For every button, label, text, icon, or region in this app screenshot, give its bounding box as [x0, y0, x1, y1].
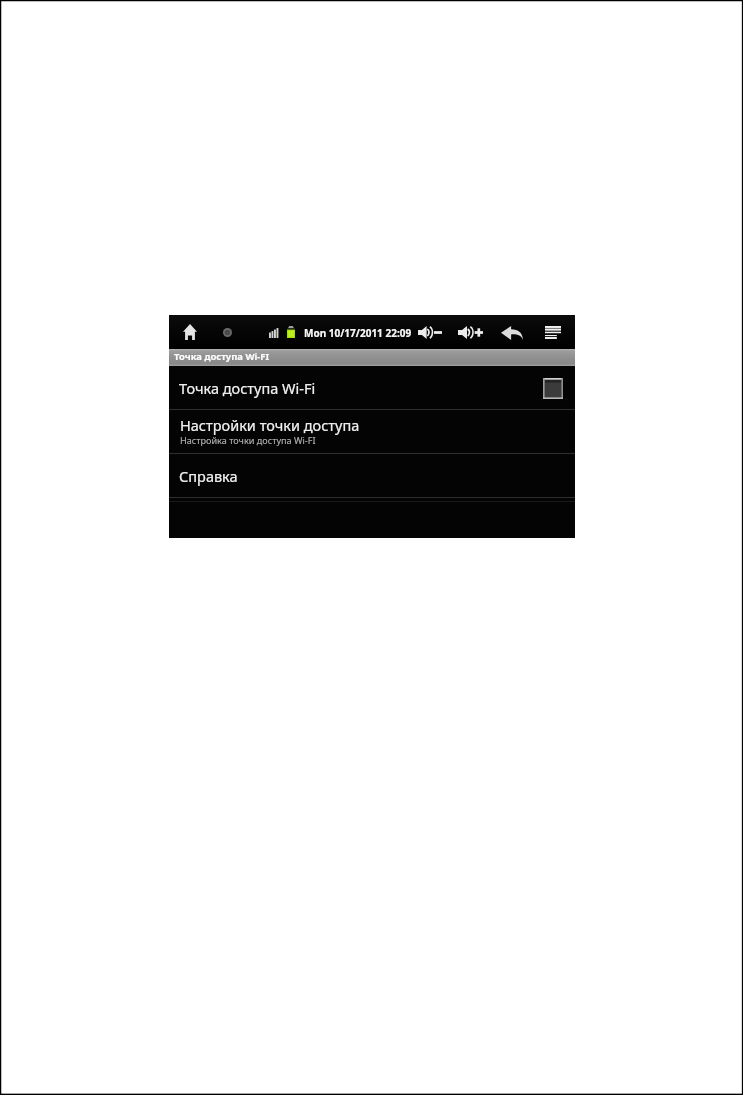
button[interactable]: Настройки точки доступа — [169, 410, 575, 453]
staticText: Настройка точки доступа Wi-FI — [180, 434, 316, 446]
staticText: Настройки точки доступа — [180, 415, 360, 435]
staticText: Справка — [179, 466, 238, 486]
button[interactable]: Volume up — [458, 326, 483, 339]
staticText: Точка доступа Wi-FI — [174, 350, 270, 363]
button[interactable]: Menu — [545, 326, 561, 339]
button[interactable]: Back — [501, 326, 523, 340]
button[interactable]: Справка — [169, 454, 575, 497]
button[interactable]: Toggle Wi-Fi hotspot — [543, 378, 563, 399]
staticText: Mon 10/17/2011 22:09 — [304, 326, 412, 340]
staticText: Точка доступа Wi-Fi — [179, 378, 316, 398]
button[interactable]: Home — [183, 324, 197, 340]
button[interactable]: Volume down — [418, 326, 442, 339]
button[interactable]: Точка доступа Wi-Fi — [169, 366, 575, 409]
